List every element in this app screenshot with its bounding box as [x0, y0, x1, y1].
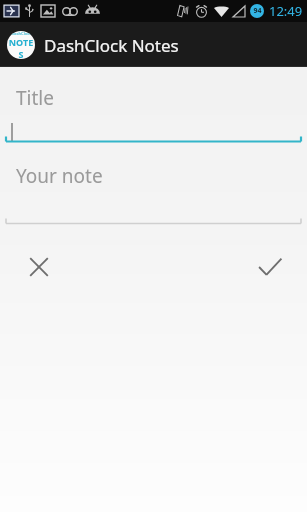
- button[interactable]: Title: [0, 85, 307, 143]
- staticText: DashClock Notes: [44, 34, 179, 57]
- button[interactable]: Your note: [0, 163, 307, 225]
- button[interactable]: Discard: [18, 246, 60, 288]
- staticText: Your note: [16, 163, 103, 189]
- staticText: NOTES: [7, 36, 35, 59]
- button[interactable]: Save: [249, 246, 291, 288]
- staticText: DashClock: [11, 31, 32, 36]
- staticText: 12:49: [269, 2, 303, 20]
- button[interactable]: DashClock: [0, 22, 307, 67]
- staticText: Title: [16, 85, 54, 111]
- staticText: 94: [253, 6, 262, 16]
